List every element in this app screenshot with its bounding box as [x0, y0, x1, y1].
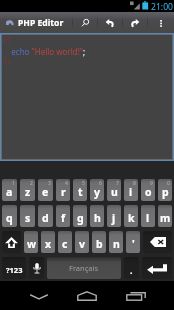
staticText: d [42, 211, 49, 225]
staticText: 0 [167, 180, 170, 187]
button[interactable]: q [2, 205, 17, 227]
button[interactable]: Home [63, 281, 111, 310]
staticText: w [27, 237, 36, 251]
button[interactable]: Shift [2, 231, 21, 253]
button[interactable]: More options [148, 12, 174, 33]
staticText: ?123 [6, 265, 23, 275]
button[interactable]: Undo [98, 12, 122, 33]
button[interactable]: y [90, 179, 104, 201]
button[interactable]: Search [73, 12, 97, 33]
staticText: . [130, 264, 133, 276]
staticText: 6 [99, 180, 102, 187]
staticText: 4 [65, 180, 68, 187]
staticText: i [129, 185, 133, 199]
button[interactable]: a [2, 179, 17, 201]
staticText: v [79, 237, 85, 251]
staticText: ?> [3, 57, 12, 68]
button[interactable]: l [141, 205, 155, 227]
staticText: c [62, 237, 68, 251]
button[interactable]: u [107, 179, 121, 201]
button[interactable]: j [107, 205, 121, 227]
staticText: e [42, 185, 49, 199]
button[interactable]: r [56, 179, 70, 201]
button[interactable]: Backspace [143, 231, 172, 253]
staticText: <? [3, 35, 12, 46]
staticText: 3 [48, 180, 51, 187]
staticText: x [45, 237, 52, 251]
staticText: h [94, 211, 101, 225]
staticText: s [25, 211, 31, 225]
staticText: 9 [150, 180, 153, 187]
button[interactable]: . [124, 257, 139, 279]
staticText: 1 [12, 180, 15, 187]
staticText: b [96, 237, 103, 251]
staticText: 5 [82, 180, 85, 187]
staticText: t [78, 185, 83, 199]
staticText: m [160, 211, 171, 225]
button[interactable]: t [73, 179, 87, 201]
button[interactable]: c [58, 231, 72, 253]
button[interactable]: d [38, 205, 53, 227]
button[interactable]: e [38, 179, 53, 201]
staticText: ' [132, 237, 135, 251]
button[interactable]: Hide keyboard [15, 281, 63, 310]
button[interactable]: b [92, 231, 106, 253]
button[interactable]: x [41, 231, 55, 253]
button[interactable]: m [158, 205, 172, 227]
staticText: Français [69, 263, 99, 273]
staticText: 7 [116, 180, 119, 187]
staticText: PHP Editor [18, 17, 64, 29]
staticText: n [113, 237, 120, 251]
button[interactable]: Enter [142, 257, 172, 279]
staticText: f [61, 211, 66, 225]
button[interactable]: i [124, 179, 138, 201]
staticText: y [94, 185, 100, 199]
staticText: echo "Hello world!"; [3, 46, 86, 57]
button[interactable]: f [56, 205, 70, 227]
staticText: 2 [30, 180, 33, 187]
staticText: k [128, 211, 135, 225]
staticText: r [61, 185, 66, 199]
button[interactable]: Français [47, 257, 121, 279]
button[interactable]: w [24, 231, 38, 253]
button[interactable]: z [20, 179, 35, 201]
button[interactable]: n [109, 231, 123, 253]
staticText: u [111, 185, 118, 199]
staticText: g [77, 211, 84, 225]
staticText: q [6, 211, 13, 225]
staticText: 21:00 [151, 1, 173, 13]
button[interactable]: h [90, 205, 104, 227]
button[interactable]: g [73, 205, 87, 227]
button[interactable]: v [75, 231, 89, 253]
staticText: a [6, 185, 13, 199]
staticText: p [162, 185, 169, 199]
button[interactable]: Redo [123, 12, 147, 33]
staticText: l [146, 211, 150, 225]
button[interactable]: ' [126, 231, 140, 253]
staticText: j [112, 211, 116, 225]
staticText: z [25, 185, 31, 199]
staticText: o [145, 185, 152, 199]
button[interactable]: PHP Editor [0, 12, 72, 33]
button[interactable]: Voice input [29, 257, 44, 279]
staticText: 8 [133, 180, 136, 187]
button[interactable]: ?123 [2, 257, 26, 279]
button[interactable]: s [20, 205, 35, 227]
button[interactable]: Recent apps [112, 281, 160, 310]
button[interactable]: k [124, 205, 138, 227]
button[interactable]: p [158, 179, 172, 201]
button[interactable]: o [141, 179, 155, 201]
